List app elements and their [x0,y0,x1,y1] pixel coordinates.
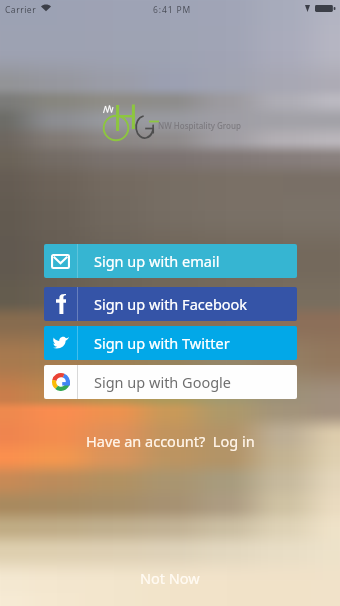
staticText: Carrier [5,4,37,16]
staticText: Not Now [140,568,200,588]
staticText: NW Hospitality Group [158,120,241,131]
button[interactable]: Twitter [44,326,297,360]
other: Email [51,254,70,269]
staticText: Sign up with Facebook [94,294,248,314]
staticText: Sign up with Twitter [94,333,230,353]
button[interactable]: Facebook [44,287,297,321]
button[interactable]: Not Now [134,565,206,591]
staticText: Sign up with Google [94,372,232,392]
button[interactable]: Email [44,244,297,278]
staticText: Have an account? Log in [86,431,255,451]
other: Facebook [56,294,66,314]
button[interactable]: Have an account? Log in [82,429,259,453]
staticText: Sign up with email [94,251,220,271]
staticText: 6:41 PM [153,4,192,16]
button[interactable]: Google [44,365,297,399]
other: Twitter [53,336,69,350]
other: Google [52,373,70,391]
